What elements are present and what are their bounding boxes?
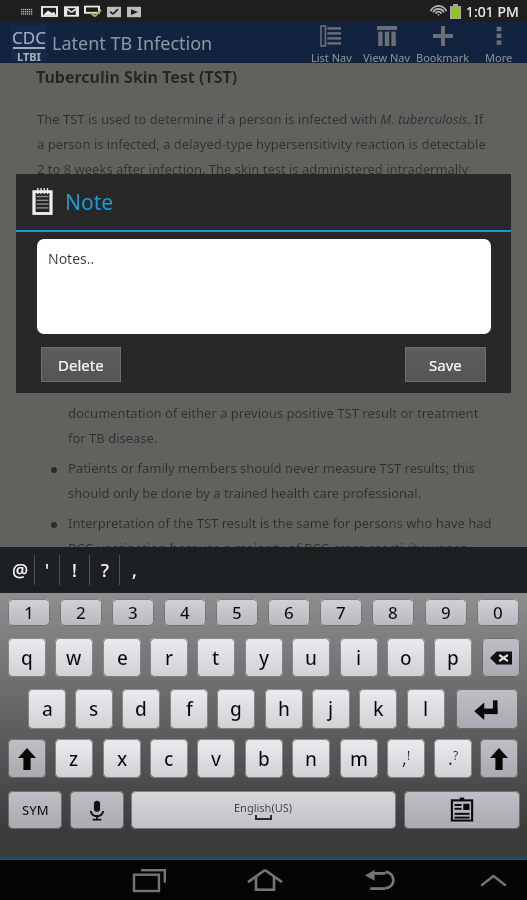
button[interactable]: Back	[355, 860, 403, 900]
button[interactable]: SYM	[8, 791, 62, 829]
button[interactable]: '	[35, 547, 59, 593]
button[interactable]: g	[217, 689, 255, 729]
button[interactable]: j	[312, 689, 350, 729]
button[interactable]: .	[434, 739, 472, 778]
staticText: p	[447, 645, 459, 671]
button[interactable]: View Nav	[359, 22, 415, 63]
staticText: '	[45, 558, 50, 583]
button[interactable]: 5	[216, 599, 258, 626]
button[interactable]: @	[6, 547, 34, 593]
button[interactable]: 2	[60, 599, 102, 626]
button[interactable]: y	[245, 638, 283, 677]
button[interactable]: Save	[405, 347, 486, 382]
staticText: h	[278, 696, 290, 722]
staticText: r	[165, 645, 174, 671]
staticText: The TST is used to determine if a person…	[37, 110, 527, 177]
staticText: v	[211, 746, 222, 772]
button[interactable]: q	[8, 638, 46, 677]
staticText: g	[230, 696, 242, 722]
button[interactable]: f	[170, 689, 208, 729]
staticText: ,	[132, 558, 137, 583]
button[interactable]: s	[75, 689, 113, 729]
button[interactable]: n	[292, 739, 330, 778]
button[interactable]: e	[103, 638, 141, 677]
button[interactable]: p	[434, 638, 472, 677]
staticText: .	[448, 746, 453, 771]
button[interactable]: 1	[8, 599, 50, 626]
staticText: @	[12, 558, 29, 583]
button[interactable]: t	[197, 638, 235, 677]
button[interactable]: 8	[372, 599, 414, 626]
staticText: Save	[429, 355, 462, 375]
button[interactable]: !	[60, 547, 89, 593]
button[interactable]: Notes..	[37, 239, 491, 334]
staticText: Notes..	[48, 249, 95, 268]
button[interactable]: 6	[268, 599, 310, 626]
button[interactable]: List Nav	[303, 22, 359, 63]
staticText: Bookmark	[416, 50, 470, 63]
button[interactable]: Voice input	[70, 791, 124, 829]
button[interactable]: u	[292, 638, 330, 677]
button[interactable]: 9	[425, 599, 467, 626]
button[interactable]: r	[150, 638, 188, 677]
button[interactable]: k	[359, 689, 397, 729]
staticText: l	[423, 696, 429, 722]
staticText: 3	[128, 601, 138, 624]
staticText: t	[212, 645, 220, 671]
button[interactable]: h	[265, 689, 303, 729]
button[interactable]: d	[122, 689, 160, 729]
button[interactable]: l	[407, 689, 445, 729]
button[interactable]: ,	[120, 547, 148, 593]
staticText: 0	[493, 601, 503, 624]
staticText: i	[356, 645, 362, 671]
staticText: 2	[76, 601, 86, 624]
button[interactable]: English(US)	[131, 791, 396, 829]
button[interactable]: 7	[320, 599, 362, 626]
staticText: Interpretation of the TST result is the …	[68, 514, 492, 556]
button[interactable]: o	[387, 638, 425, 677]
button[interactable]: ,	[387, 739, 425, 778]
staticText: 6	[284, 601, 294, 624]
button[interactable]: Home	[241, 860, 289, 900]
button[interactable]: b	[245, 739, 283, 778]
staticText: c	[164, 746, 174, 772]
staticText: u	[305, 645, 317, 671]
staticText: z	[69, 746, 79, 772]
button[interactable]: Delete	[41, 347, 121, 382]
staticText: View Nav	[363, 50, 411, 63]
button[interactable]: Recent apps	[126, 860, 174, 900]
button[interactable]: Shift	[8, 739, 46, 778]
button[interactable]: Bookmark	[415, 22, 471, 63]
staticText: k	[373, 696, 384, 722]
staticText: q	[21, 645, 33, 671]
button[interactable]: c	[150, 739, 188, 778]
button[interactable]: 0	[477, 599, 519, 626]
button[interactable]: Clipboard	[404, 791, 520, 829]
button[interactable]: Shift	[480, 739, 518, 778]
button[interactable]: Hide keyboard	[469, 860, 517, 900]
staticText: Note	[65, 188, 114, 217]
button[interactable]: More	[471, 22, 527, 63]
staticText: !	[407, 747, 411, 763]
button[interactable]: a	[28, 689, 66, 729]
button[interactable]: ?	[90, 547, 119, 593]
button[interactable]: Backspace	[482, 638, 520, 677]
button[interactable]: v	[197, 739, 235, 778]
button[interactable]: 3	[112, 599, 154, 626]
staticText: 1:01 PM	[466, 2, 519, 21]
staticText: 8	[388, 601, 398, 624]
button[interactable]: Enter	[456, 689, 518, 729]
button[interactable]: i	[340, 638, 378, 677]
staticText: List Nav	[311, 50, 352, 63]
button[interactable]: x	[103, 739, 141, 778]
button[interactable]: w	[55, 638, 93, 677]
staticText: CDC	[12, 26, 46, 49]
button[interactable]: m	[340, 739, 378, 778]
staticText: More	[485, 50, 513, 63]
staticText: d	[135, 696, 147, 722]
button[interactable]: 4	[164, 599, 206, 626]
staticText: LTBI	[17, 49, 41, 64]
staticText: s	[89, 696, 99, 722]
button[interactable]: z	[55, 739, 93, 778]
staticText: e	[117, 645, 128, 671]
